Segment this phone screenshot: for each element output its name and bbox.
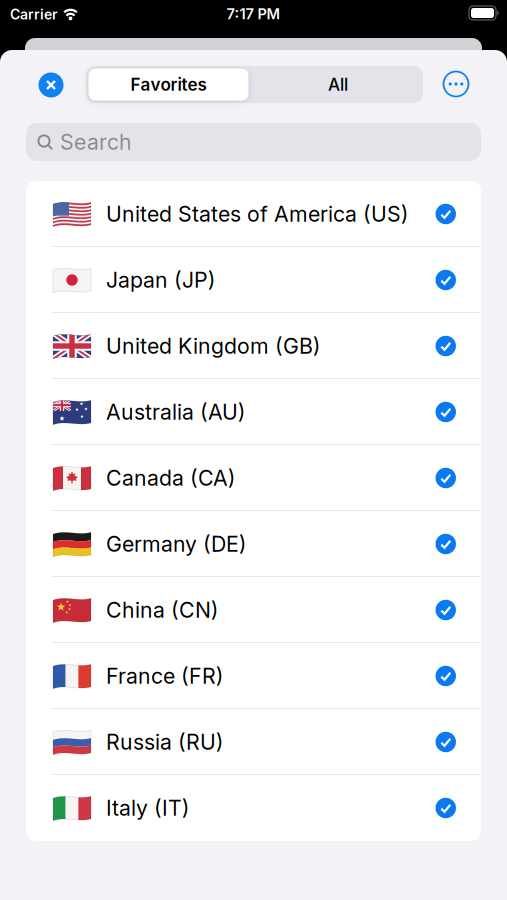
staticText: Favorites [130, 74, 206, 95]
staticText: All [328, 74, 348, 95]
button[interactable]: United States of America (US) [26, 181, 481, 247]
button[interactable]: Search [26, 123, 481, 161]
button[interactable]: Russia (RU) [26, 709, 481, 775]
button[interactable]: More [443, 71, 468, 96]
button[interactable]: Japan (JP) [26, 247, 481, 313]
button[interactable]: Germany (DE) [26, 511, 481, 577]
button[interactable]: Close [38, 72, 63, 97]
staticText: 7:17 PM [226, 5, 280, 23]
staticText: Italy (IT) [106, 795, 190, 821]
staticText: Germany (DE) [106, 531, 247, 557]
button[interactable]: China (CN) [26, 577, 481, 643]
button[interactable]: United Kingdom (GB) [26, 313, 481, 379]
button[interactable]: Australia (AU) [26, 379, 481, 445]
staticText: Carrier [10, 6, 58, 23]
staticText: United States of America (US) [106, 201, 409, 227]
staticText: Japan (JP) [106, 267, 216, 293]
button[interactable]: All [254, 66, 422, 103]
staticText: United Kingdom (GB) [106, 333, 321, 359]
staticText: Russia (RU) [106, 729, 224, 755]
staticText: France (FR) [106, 663, 224, 689]
staticText: Search [60, 129, 132, 155]
button[interactable]: Favorites [88, 68, 248, 100]
staticText: China (CN) [106, 597, 219, 623]
button[interactable]: France (FR) [26, 643, 481, 709]
button[interactable]: Canada (CA) [26, 445, 481, 511]
button[interactable]: Italy (IT) [26, 775, 481, 841]
staticText: Australia (AU) [106, 399, 246, 425]
staticText: Canada (CA) [106, 465, 236, 491]
